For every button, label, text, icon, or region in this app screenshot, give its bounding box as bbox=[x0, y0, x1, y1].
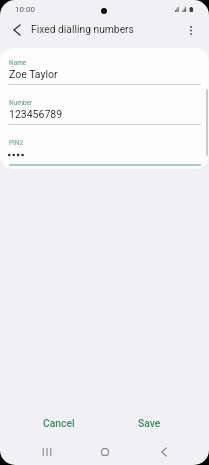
button[interactable]: Cancel bbox=[32, 412, 86, 434]
button[interactable]: Back bbox=[148, 437, 180, 465]
staticText: Number bbox=[9, 99, 33, 107]
staticText: Zoe Taylor bbox=[9, 68, 58, 80]
button[interactable]: More options bbox=[179, 18, 203, 42]
staticText: Name bbox=[9, 59, 27, 67]
staticText: 10:00 bbox=[15, 5, 35, 14]
button[interactable]: Navigate up bbox=[5, 18, 29, 42]
button[interactable]: Recent apps bbox=[31, 437, 63, 465]
staticText: PIN2 bbox=[9, 139, 24, 147]
staticText: Save bbox=[138, 417, 161, 429]
button[interactable]: Save bbox=[126, 412, 172, 434]
staticText: Fixed dialling numbers bbox=[31, 23, 134, 35]
button[interactable]: Home bbox=[89, 437, 121, 465]
staticText: Cancel bbox=[43, 417, 75, 429]
staticText: 123456789 bbox=[9, 108, 63, 120]
